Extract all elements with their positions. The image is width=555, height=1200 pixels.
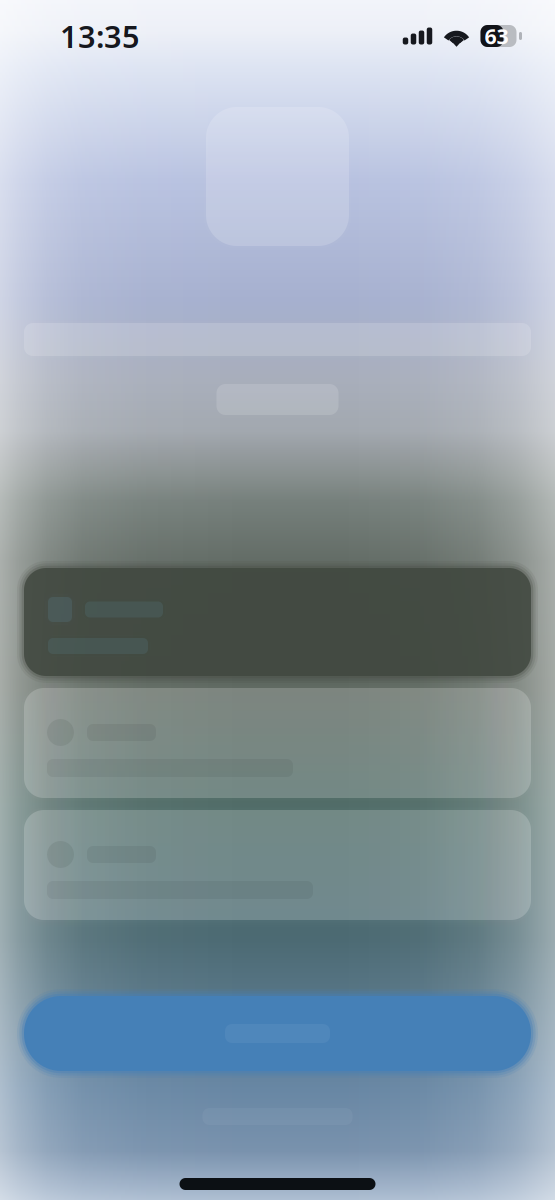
staticText: 63 bbox=[484, 22, 508, 50]
button[interactable] bbox=[24, 568, 531, 676]
button[interactable] bbox=[24, 810, 531, 920]
button[interactable] bbox=[24, 996, 531, 1071]
staticText: 13:35 bbox=[60, 16, 140, 56]
button[interactable] bbox=[24, 688, 531, 798]
